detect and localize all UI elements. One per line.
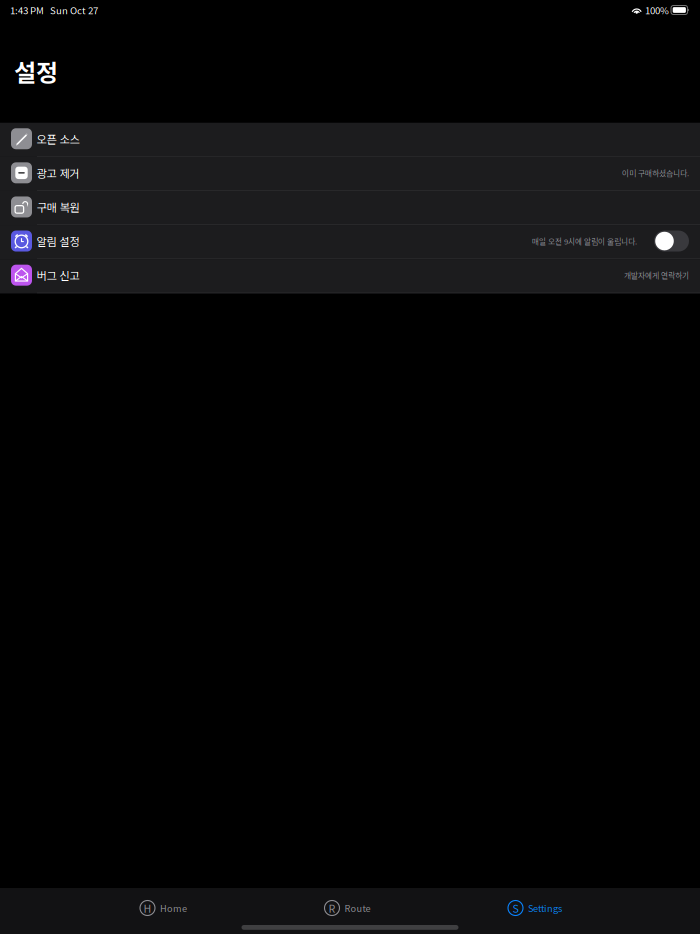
button[interactable]: 버그 신고 (0, 259, 700, 293)
staticText: 알림 설정 (36, 233, 79, 249)
staticText: Home (160, 901, 187, 915)
staticText: Route (344, 901, 370, 915)
staticText: 버그 신고 (36, 267, 79, 283)
staticText: 매일 오전 9시에 알림이 울립니다. (532, 235, 637, 247)
button[interactable]: 구매 복원 (0, 191, 700, 225)
staticText: 이미 구매하셨습니다. (622, 167, 689, 178)
staticText: 개발자에게 연락하기 (624, 270, 689, 281)
staticText: 1:43 PM (10, 3, 44, 17)
button[interactable]: R (312, 893, 382, 923)
staticText: Sun Oct 27 (50, 3, 98, 17)
button[interactable]: 오픈 소스 (0, 123, 700, 157)
staticText: 오픈 소스 (36, 131, 79, 147)
staticText: 100% (645, 3, 669, 17)
staticText: 구매 복원 (36, 199, 79, 215)
staticText: R (328, 900, 335, 916)
button[interactable]: 알림 설정 (0, 225, 700, 259)
staticText: Settings (528, 901, 562, 915)
button[interactable]: H (128, 893, 199, 923)
button[interactable]: S (496, 893, 574, 923)
staticText: S (512, 900, 518, 916)
button[interactable]: 광고 제거 (0, 157, 700, 191)
staticText: H (143, 900, 151, 916)
button[interactable]: 알림 설정 (654, 231, 689, 252)
staticText: 광고 제거 (36, 165, 79, 181)
staticText: 설정 (14, 54, 58, 89)
